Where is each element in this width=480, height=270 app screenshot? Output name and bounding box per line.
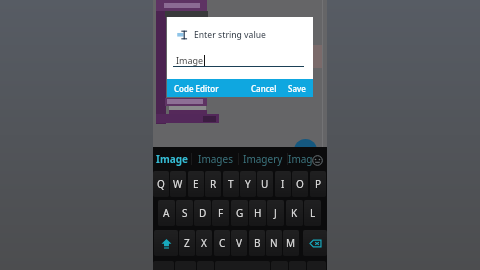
- staticText: L: [310, 206, 316, 220]
- staticText: J: [274, 206, 277, 220]
- staticText: Enter string value: [194, 29, 266, 41]
- staticText: I: [281, 177, 285, 191]
- staticText: Imag: [288, 152, 313, 166]
- button[interactable]: K: [286, 200, 303, 226]
- staticText: Code Editor: [174, 83, 219, 94]
- button[interactable]: R: [205, 171, 221, 197]
- button[interactable]: D: [194, 200, 211, 226]
- button[interactable]: F: [212, 200, 229, 226]
- button[interactable]: Y: [240, 171, 256, 197]
- staticText: R: [210, 177, 217, 191]
- button[interactable]: W: [170, 171, 186, 197]
- button[interactable]: Imagery: [239, 147, 287, 170]
- staticText: Y: [245, 177, 251, 191]
- button[interactable]: Images: [192, 147, 238, 170]
- button[interactable]: Emoji: [312, 155, 323, 166]
- staticText: A: [163, 206, 170, 220]
- staticText: Cancel: [251, 83, 277, 94]
- staticText: P: [315, 177, 322, 191]
- staticText: Save: [288, 83, 306, 94]
- button[interactable]: I: [275, 171, 291, 197]
- button[interactable]: H: [249, 200, 266, 226]
- button[interactable]: O: [292, 171, 308, 197]
- button[interactable]: Image: [153, 147, 191, 170]
- staticText: S: [182, 206, 188, 220]
- staticText: T: [228, 177, 234, 191]
- staticText: W: [173, 177, 183, 191]
- button[interactable]: Save: [288, 79, 306, 97]
- staticText: D: [199, 206, 207, 220]
- button[interactable]: E: [188, 171, 204, 197]
- button[interactable]: Backspace: [303, 230, 327, 256]
- staticText: Q: [157, 177, 165, 191]
- button[interactable]: S: [176, 200, 193, 226]
- button[interactable]: G: [231, 200, 248, 226]
- button[interactable]: A: [158, 200, 175, 226]
- button[interactable]: Imag: [288, 147, 312, 170]
- button[interactable]: Add block: [294, 139, 317, 162]
- staticText: K: [291, 206, 298, 220]
- staticText: H: [254, 206, 262, 220]
- button[interactable]: Code Editor: [178, 79, 214, 97]
- staticText: Image: [176, 54, 204, 66]
- staticText: C: [219, 236, 226, 250]
- staticText: N: [270, 236, 278, 250]
- button[interactable]: P: [310, 171, 326, 197]
- button[interactable]: Shift: [154, 230, 178, 256]
- button[interactable]: T: [223, 171, 239, 197]
- button[interactable]: J: [267, 200, 284, 226]
- button[interactable]: B: [249, 230, 265, 256]
- staticText: Image: [156, 152, 188, 166]
- staticText: Imagery: [243, 152, 283, 166]
- button[interactable]: N: [266, 230, 282, 256]
- button[interactable]: Q: [153, 171, 169, 197]
- button[interactable]: X: [196, 230, 212, 256]
- staticText: E: [193, 177, 199, 191]
- button[interactable]: C: [214, 230, 230, 256]
- staticText: V: [236, 236, 242, 250]
- button[interactable]: Cancel: [253, 79, 275, 97]
- staticText: Z: [184, 236, 190, 250]
- staticText: B: [254, 236, 261, 250]
- button[interactable]: U: [257, 171, 273, 197]
- staticText: U: [261, 177, 269, 191]
- button[interactable]: V: [231, 230, 247, 256]
- staticText: G: [236, 206, 244, 220]
- button[interactable]: M: [283, 230, 299, 256]
- staticText: F: [218, 206, 224, 220]
- button[interactable]: Z: [179, 230, 195, 256]
- staticText: M: [286, 236, 296, 250]
- staticText: O: [296, 177, 304, 191]
- staticText: X: [201, 236, 207, 250]
- button[interactable]: L: [304, 200, 321, 226]
- staticText: Images: [198, 152, 233, 166]
